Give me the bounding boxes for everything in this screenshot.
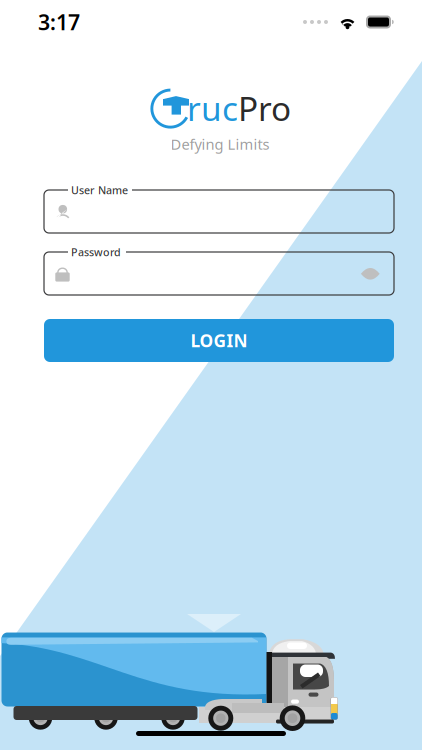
button[interactable]: LOGIN	[44, 319, 394, 362]
staticText: LOGIN	[190, 329, 247, 352]
staticText: Pro	[238, 86, 291, 130]
staticText: User Name	[71, 183, 128, 197]
staticText: 3:17	[38, 8, 80, 36]
button[interactable]: Show password	[353, 259, 387, 289]
staticText: Defying Limits	[170, 134, 269, 154]
staticText: Password	[71, 245, 121, 259]
staticText: ruc	[187, 86, 238, 130]
